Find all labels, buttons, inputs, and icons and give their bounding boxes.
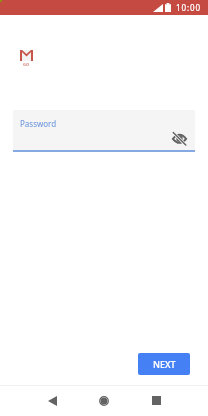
staticText: NEXT (153, 358, 176, 370)
staticText: 10:00 (176, 2, 201, 13)
button[interactable]: Home (91, 385, 117, 416)
button[interactable]: Recents (143, 385, 169, 416)
staticText: GO (23, 62, 30, 67)
button[interactable]: Show password (172, 131, 187, 146)
button[interactable]: Back (39, 385, 65, 416)
button[interactable]: NEXT (138, 353, 190, 375)
staticText: Password (20, 118, 57, 129)
button[interactable]: Password (13, 110, 195, 150)
